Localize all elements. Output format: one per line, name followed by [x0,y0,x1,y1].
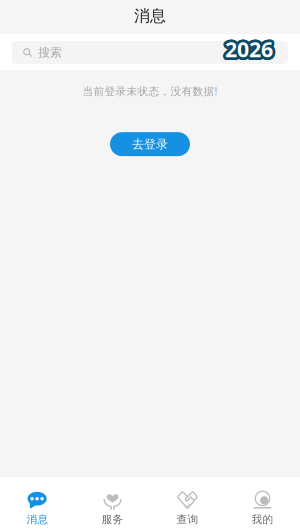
button[interactable]: 搜索 [12,41,288,64]
staticText: 2026 [223,33,271,62]
staticText: 2026 [224,36,272,65]
staticText: 2026 [225,37,273,65]
staticText: 搜索 [38,45,62,60]
staticText: 2026 [226,32,274,61]
staticText: 我的 [251,513,273,526]
staticText: 2026 [226,32,274,60]
staticText: 2026 [226,34,274,62]
staticText: 服务 [101,513,123,526]
staticText: 2026 [227,33,275,61]
staticText: 查询 [176,513,198,526]
staticText: 2026 [228,35,276,64]
staticText: 2026 [226,35,274,63]
staticText: 2026 [228,34,276,62]
button[interactable]: 服务 [75,477,150,530]
staticText: 当前登录未状态，没有数据! [82,84,217,98]
button[interactable]: 去登录 [110,132,190,156]
staticText: 2026 [226,33,274,62]
staticText: 2026 [223,34,271,62]
staticText: 消息 [134,6,166,26]
staticText: 2026 [225,34,273,62]
staticText: 2026 [224,37,272,66]
staticText: 2026 [225,37,273,66]
staticText: 2026 [224,35,272,63]
staticText: 2026 [225,33,273,61]
staticText: 2026 [224,34,272,62]
staticText: 2026 [227,33,275,62]
staticText: 2026 [224,32,272,61]
staticText: 2026 [225,33,273,61]
staticText: 消息 [26,513,48,526]
staticText: 2026 [225,37,273,65]
staticText: 2026 [224,33,272,62]
staticText: 2026 [226,34,274,63]
staticText: 2026 [225,36,273,64]
staticText: 2026 [224,32,272,60]
staticText: 2026 [223,36,271,64]
staticText: 2026 [226,37,274,66]
staticText: 2026 [222,34,270,62]
staticText: 2026 [225,35,273,63]
staticText: 2026 [223,36,271,64]
staticText: 2026 [222,35,270,64]
staticText: 2026 [226,36,274,64]
staticText: 2026 [225,32,273,60]
staticText: 2026 [226,35,274,64]
staticText: 去登录 [132,137,168,151]
button[interactable]: 消息 [0,477,75,530]
staticText: 2026 [222,35,270,63]
staticText: 2026 [226,36,274,65]
staticText: 2026 [224,37,272,65]
staticText: 2026 [223,37,271,65]
staticText: 2026 [225,36,273,64]
staticText: 2026 [226,37,274,65]
staticText: 2026 [227,36,275,64]
staticText: 2026 [223,34,271,63]
staticText: 2026 [228,35,276,63]
button[interactable]: 查询 [150,477,225,530]
staticText: 2026 [223,35,271,63]
button[interactable]: 我的 [225,477,300,530]
staticText: 2026 [227,37,275,65]
staticText: 2026 [225,34,273,62]
staticText: 2026 [224,35,272,63]
staticText: 2026 [227,35,275,63]
staticText: 2026 [227,34,275,63]
staticText: 2026 [223,33,271,61]
